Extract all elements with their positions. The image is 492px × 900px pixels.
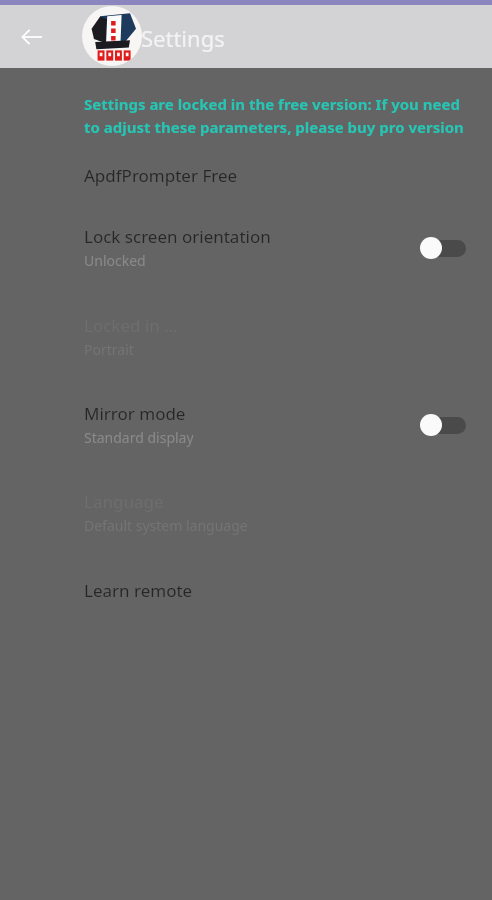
staticText: Unlocked	[84, 251, 146, 270]
staticText: Settings	[141, 23, 225, 53]
staticText: Settings are locked in the free version:…	[84, 94, 460, 114]
button[interactable]: Toggle	[420, 411, 466, 439]
staticText: Default system language	[84, 516, 248, 535]
staticText: Standard display	[84, 428, 194, 447]
button[interactable]: Back	[10, 15, 54, 59]
staticText: Learn remote	[84, 579, 193, 602]
staticText: Portrait	[84, 340, 134, 359]
staticText: ApdfPrompter Free	[84, 164, 238, 187]
button[interactable]: Learn remote	[0, 579, 492, 602]
button[interactable]: ApdfPrompter Free	[0, 164, 492, 187]
staticText: to adjust these parameters, please buy p…	[84, 117, 464, 137]
button[interactable]: Toggle	[420, 234, 466, 262]
button[interactable]: Mirror mode	[0, 402, 492, 447]
staticText: Lock screen orientation	[84, 225, 271, 248]
button[interactable]: Lock screen orientation	[0, 225, 492, 270]
staticText: Mirror mode	[84, 402, 186, 425]
